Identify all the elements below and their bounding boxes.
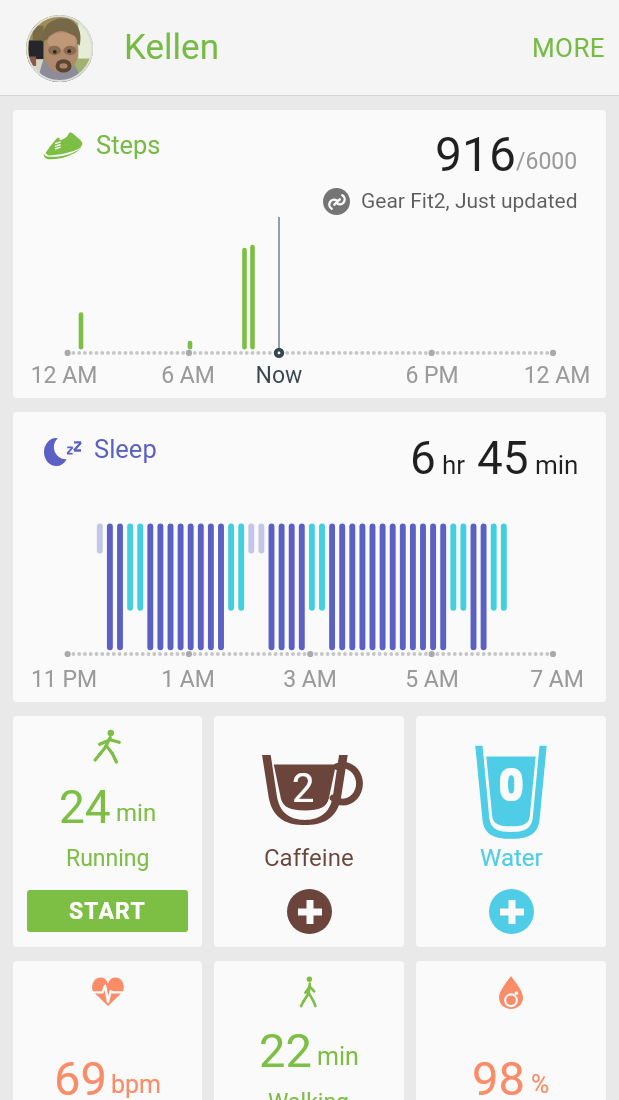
staticText: Sleep xyxy=(94,434,157,464)
staticText: hr xyxy=(442,450,466,480)
button[interactable]: START xyxy=(27,890,188,932)
staticText: 5 AM xyxy=(384,666,480,693)
staticText: min xyxy=(535,450,579,480)
button[interactable]: Profile photo xyxy=(26,15,93,82)
staticText: 3 AM xyxy=(262,666,358,693)
staticText: 0 xyxy=(500,762,523,809)
staticText: Steps xyxy=(96,130,161,160)
staticText: 1 AM xyxy=(140,666,236,693)
button[interactable]: MORE xyxy=(532,25,605,71)
button[interactable]: Sleep xyxy=(13,412,606,702)
staticText: 98 xyxy=(472,1051,525,1100)
staticText: % xyxy=(531,1070,550,1099)
staticText: bpm xyxy=(111,1070,161,1099)
staticText: 2 xyxy=(292,765,315,812)
button[interactable]: 69 xyxy=(13,961,202,1100)
staticText: 6 AM xyxy=(140,362,236,389)
staticText: 12 AM xyxy=(509,362,605,389)
staticText: Caffeine xyxy=(264,844,354,872)
staticText: 7 AM xyxy=(509,666,605,693)
staticText: 11 PM xyxy=(16,666,112,693)
button[interactable]: 22 xyxy=(214,961,404,1100)
staticText: Now xyxy=(231,362,327,389)
button[interactable]: 0 xyxy=(416,716,606,947)
staticText: MORE xyxy=(532,33,605,63)
button[interactable]: 24 xyxy=(13,716,202,947)
staticText: START xyxy=(69,898,146,925)
button[interactable]: Steps xyxy=(13,110,606,398)
staticText: Water xyxy=(480,844,543,872)
staticText: min xyxy=(116,799,157,827)
staticText: 69 xyxy=(54,1051,107,1100)
staticText: 916 xyxy=(435,126,516,182)
staticText: 22 xyxy=(259,1023,312,1078)
staticText: 45 xyxy=(477,431,529,485)
staticText: 6 xyxy=(410,431,436,485)
staticText: Gear Fit2, Just updated xyxy=(361,189,578,214)
button[interactable]: 2 xyxy=(214,716,404,947)
button[interactable]: Add caffeine xyxy=(287,889,332,934)
staticText: 12 AM xyxy=(16,362,112,389)
staticText: 6 PM xyxy=(384,362,480,389)
button[interactable]: 98 xyxy=(416,961,606,1100)
staticText: Kellen xyxy=(124,27,219,68)
staticText: Running xyxy=(66,845,150,872)
button[interactable]: Add water xyxy=(489,889,534,934)
staticText: Walking xyxy=(268,1089,350,1100)
staticText: 24 xyxy=(59,780,111,834)
staticText: min xyxy=(317,1042,359,1071)
staticText: /6000 xyxy=(516,148,578,175)
